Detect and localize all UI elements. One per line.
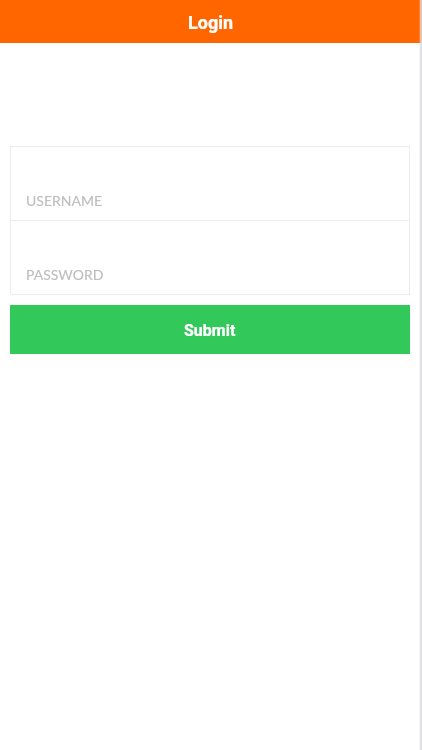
- staticText: USERNAME: [26, 192, 102, 209]
- button[interactable]: USERNAME: [10, 146, 410, 221]
- staticText: Login: [188, 12, 234, 33]
- button[interactable]: Submit: [10, 305, 410, 354]
- staticText: PASSWORD: [26, 266, 104, 283]
- staticText: Submit: [184, 321, 236, 340]
- button[interactable]: PASSWORD: [10, 220, 410, 295]
